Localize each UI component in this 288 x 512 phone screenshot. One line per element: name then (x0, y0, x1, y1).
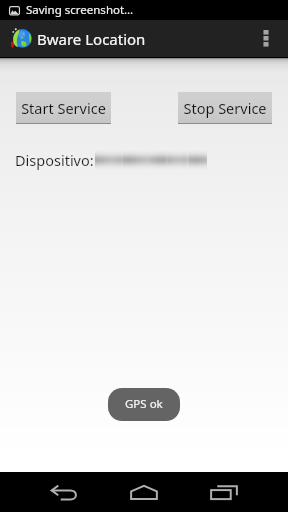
button[interactable]: Start Service (16, 92, 111, 124)
staticText: Saving screenshot… (26, 2, 134, 18)
staticText: GPS ok (125, 396, 163, 412)
button[interactable]: GPS ok (108, 388, 180, 421)
staticText: Stop Service (183, 98, 267, 118)
button[interactable]: Recent apps (194, 472, 254, 512)
staticText: Start Service (21, 98, 106, 118)
button[interactable]: Back (34, 472, 94, 512)
button[interactable]: Home (114, 472, 174, 512)
button[interactable]: Stop Service (178, 92, 272, 124)
button[interactable]: More options (250, 20, 288, 57)
staticText: Bware Location (37, 29, 146, 49)
staticText: Dispositivo: (15, 150, 94, 170)
